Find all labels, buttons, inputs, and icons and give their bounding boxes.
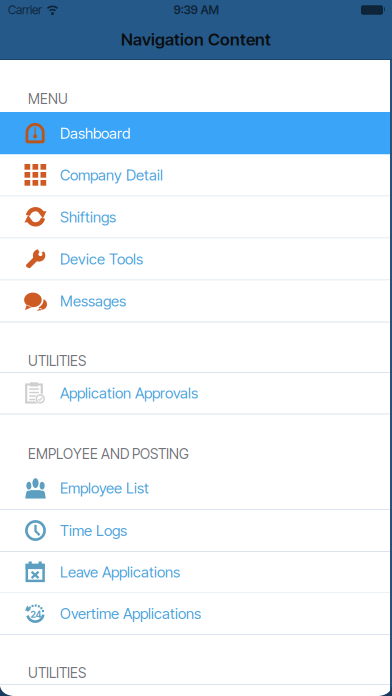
button[interactable]: Employee List xyxy=(0,467,392,510)
staticText: Leave Applications xyxy=(60,563,180,581)
staticText: Time Logs xyxy=(60,521,127,540)
staticText: Device Tools xyxy=(60,250,143,268)
staticText: Messages xyxy=(60,292,126,310)
button[interactable]: Dashboard xyxy=(0,112,392,154)
button[interactable]: Leave Applications xyxy=(0,552,392,593)
staticText: Overtime Applications xyxy=(60,604,201,623)
staticText: Application Approvals xyxy=(60,384,198,402)
button[interactable]: Company Detail xyxy=(0,154,392,196)
staticText: Company Detail xyxy=(60,166,163,184)
button[interactable]: Shiftings xyxy=(0,196,392,238)
staticText: UTILITIES xyxy=(28,353,86,369)
staticText: UTILITIES xyxy=(28,665,86,681)
staticText: 9:39 AM xyxy=(173,3,218,17)
staticText: 24 xyxy=(30,609,41,620)
staticText: MENU xyxy=(28,91,68,107)
staticText: EMPLOYEE AND POSTING xyxy=(28,446,189,462)
button[interactable]: Messages xyxy=(0,280,392,322)
staticText: Employee List xyxy=(60,479,149,497)
staticText: Carrier xyxy=(8,3,42,17)
button[interactable]: Application Approvals xyxy=(0,373,392,414)
staticText: Shiftings xyxy=(60,208,116,226)
staticText: Navigation Content xyxy=(121,29,271,50)
staticText: Dashboard xyxy=(60,124,130,142)
button[interactable]: 24 xyxy=(0,593,392,635)
button[interactable]: Time Logs xyxy=(0,510,392,552)
button[interactable]: Device Tools xyxy=(0,238,392,280)
